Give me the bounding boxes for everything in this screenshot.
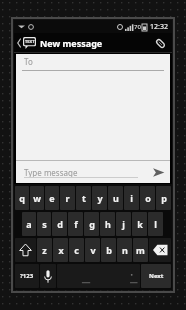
button[interactable]: r [60, 186, 75, 210]
button[interactable]: To [16, 54, 170, 71]
staticText: a [26, 218, 32, 230]
button[interactable]: c [69, 238, 84, 262]
button[interactable]: q [15, 186, 29, 210]
staticText: 70 [134, 23, 141, 31]
button[interactable]: l [148, 212, 163, 236]
staticText: z [42, 244, 47, 256]
button[interactable]: t [76, 186, 91, 210]
staticText: g [89, 218, 95, 230]
staticText: e [49, 192, 55, 204]
staticText: v [90, 244, 96, 256]
staticText: r [65, 192, 70, 204]
button[interactable]: Type message [16, 161, 170, 183]
button[interactable]: Space [57, 264, 140, 288]
staticText: h [105, 218, 111, 230]
button[interactable]: a [22, 212, 36, 236]
button[interactable]: m [133, 238, 148, 262]
button[interactable]: k [132, 212, 147, 236]
staticText: New message [40, 37, 103, 49]
button[interactable]: i [124, 186, 139, 210]
staticText: TEXT [25, 39, 35, 44]
staticText: n [122, 244, 128, 256]
button[interactable]: x [53, 238, 68, 262]
staticText: 12:32 [150, 22, 168, 32]
button[interactable]: w [30, 186, 44, 210]
button[interactable]: Attach [152, 35, 168, 51]
button[interactable]: y [92, 186, 107, 210]
button[interactable]: v [85, 238, 100, 262]
button[interactable]: n [117, 238, 132, 262]
staticText: m [136, 244, 145, 256]
staticText: c [74, 244, 79, 256]
staticText: t [82, 192, 86, 204]
staticText: Type message [24, 167, 78, 178]
staticText: u [113, 192, 119, 204]
staticText: k [137, 218, 143, 230]
button[interactable]: b [101, 238, 116, 262]
staticText: x [58, 244, 64, 256]
staticText: w [33, 192, 41, 204]
button[interactable]: z [37, 238, 52, 262]
button[interactable]: g [84, 212, 99, 236]
button[interactable]: e [45, 186, 59, 210]
staticText: o [145, 192, 151, 204]
button[interactable]: Voice input [40, 264, 56, 288]
staticText: To [24, 56, 33, 67]
button[interactable]: j [116, 212, 131, 236]
button[interactable]: d [52, 212, 67, 236]
button[interactable]: Shift [15, 238, 36, 262]
staticText: d [57, 218, 63, 230]
staticText: q [19, 192, 25, 204]
button[interactable]: p [156, 186, 171, 210]
button[interactable]: ?123 [15, 264, 39, 288]
staticText: y [97, 192, 103, 204]
button[interactable]: o [140, 186, 155, 210]
staticText: ?123 [20, 272, 34, 280]
staticText: l [154, 218, 157, 230]
button[interactable]: Next [141, 264, 171, 288]
staticText: b [106, 244, 112, 256]
staticText: s [42, 218, 47, 230]
staticText: i [130, 192, 133, 204]
button[interactable]: s [37, 212, 51, 236]
staticText: f [74, 218, 78, 230]
button[interactable]: f [68, 212, 83, 236]
staticText: j [122, 218, 125, 230]
button[interactable]: u [108, 186, 123, 210]
button[interactable]: Send [148, 162, 168, 182]
staticText: Next [149, 272, 164, 280]
button[interactable]: h [100, 212, 115, 236]
button[interactable]: Backspace [149, 238, 171, 262]
staticText: p [161, 192, 167, 204]
